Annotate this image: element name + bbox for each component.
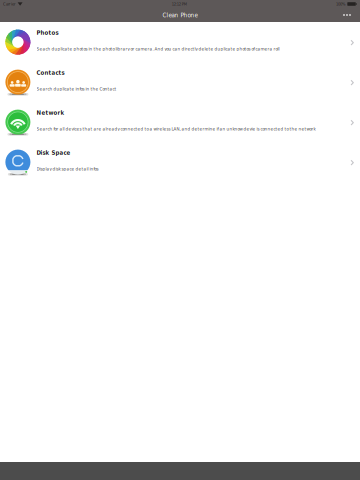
button[interactable]: Contacts [0, 62, 360, 102]
staticText: Contacts [37, 69, 65, 76]
staticText: 12:12 PM [172, 2, 187, 6]
staticText: Network [37, 109, 65, 116]
button[interactable]: More options [340, 9, 354, 21]
staticText: Disk Space [37, 149, 71, 156]
staticText: Photos [37, 29, 59, 36]
button[interactable]: Disk Space [0, 142, 360, 182]
staticText: Clean Phone [162, 11, 197, 19]
staticText: Carrier [3, 2, 16, 6]
staticText: Display disk space detail infos [37, 166, 99, 172]
staticText: Search duplicate infos in the Contact [37, 86, 117, 92]
staticText: Seach duplicate photos in the photo libr… [37, 46, 280, 52]
staticText: Search for all devices that are already … [37, 126, 316, 132]
button[interactable]: Photos [0, 22, 360, 62]
staticText: 100% [336, 2, 346, 6]
button[interactable]: Network [0, 102, 360, 142]
